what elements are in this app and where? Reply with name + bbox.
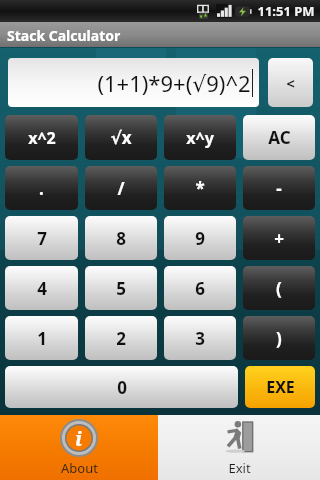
button[interactable]: √x xyxy=(85,115,157,160)
staticText: 3 xyxy=(195,327,205,350)
button[interactable]: x^y xyxy=(164,115,236,160)
staticText: * xyxy=(195,177,205,200)
staticText: / xyxy=(117,177,125,200)
staticText: About xyxy=(61,459,98,477)
staticText: Exit xyxy=(228,459,251,477)
button[interactable]: 4 xyxy=(5,266,78,310)
staticText: EXE xyxy=(266,376,295,398)
staticText: 0 xyxy=(117,376,127,399)
staticText: 2 xyxy=(116,327,126,350)
button[interactable]: (1+1)*9+(√9)^2 xyxy=(8,58,253,107)
staticText: 9 xyxy=(195,227,205,250)
staticText: < xyxy=(286,73,295,93)
staticText: √x xyxy=(110,126,132,149)
staticText: Stack Calculator xyxy=(7,26,121,45)
staticText: (1+1)*9+(√9)^2 xyxy=(97,68,251,98)
staticText: . xyxy=(39,177,44,200)
staticText: + xyxy=(274,227,284,250)
staticText: 6 xyxy=(195,277,205,300)
button[interactable]: 6 xyxy=(164,266,236,310)
button[interactable]: 1 xyxy=(5,316,78,360)
staticText: ( xyxy=(276,277,282,300)
button[interactable]: ( xyxy=(243,266,315,310)
button[interactable]: ) xyxy=(243,316,315,360)
staticText: x^y xyxy=(186,127,214,149)
button[interactable]: AC xyxy=(243,115,315,160)
staticText: 7 xyxy=(37,227,47,250)
button[interactable]: 2 xyxy=(85,316,157,360)
button[interactable]: * xyxy=(164,166,236,210)
button[interactable]: Exit xyxy=(158,415,320,480)
button[interactable]: - xyxy=(243,166,315,210)
button[interactable]: 9 xyxy=(164,216,236,260)
button[interactable]: About xyxy=(0,415,158,480)
button[interactable]: + xyxy=(243,216,315,260)
staticText: 1 xyxy=(37,327,47,350)
button[interactable]: 5 xyxy=(85,266,157,310)
staticText: 8 xyxy=(116,227,126,250)
staticText: 4 xyxy=(37,277,47,300)
staticText: 11:51 PM xyxy=(257,2,315,20)
staticText: ) xyxy=(276,327,282,350)
staticText: i xyxy=(75,425,83,452)
staticText: 5 xyxy=(116,277,126,300)
staticText: AC xyxy=(268,126,291,149)
button[interactable]: . xyxy=(5,166,78,210)
button[interactable]: 0 xyxy=(5,366,238,408)
button[interactable]: x^2 xyxy=(5,115,78,160)
staticText: x^2 xyxy=(28,127,56,149)
button[interactable]: 3 xyxy=(164,316,236,360)
button[interactable]: 7 xyxy=(5,216,78,260)
button[interactable]: / xyxy=(85,166,157,210)
button[interactable]: EXE xyxy=(245,366,315,408)
staticText: - xyxy=(276,177,282,200)
button[interactable]: 8 xyxy=(85,216,157,260)
button[interactable]: Backspace xyxy=(268,58,313,107)
